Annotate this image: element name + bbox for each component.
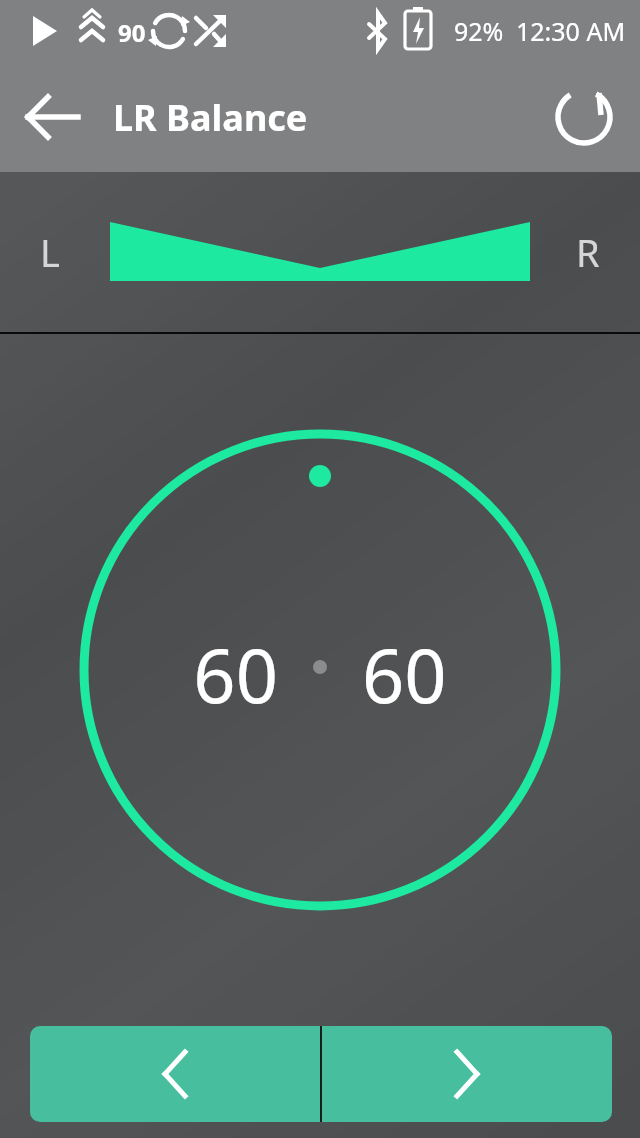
staticText: 90 xyxy=(118,16,146,49)
button[interactable]: Back xyxy=(16,79,92,155)
button[interactable]: Reset xyxy=(548,81,620,153)
staticText: L xyxy=(40,226,60,278)
button[interactable]: Balance dial xyxy=(0,334,640,1008)
staticText: 60 xyxy=(362,624,447,725)
staticText: 12:30 AM xyxy=(516,14,626,48)
staticText: 92% xyxy=(454,14,504,48)
staticText: 60 xyxy=(193,624,278,725)
staticText: LR Balance xyxy=(113,93,308,142)
staticText: R xyxy=(576,226,600,278)
button[interactable]: Shift balance left xyxy=(30,1026,320,1122)
button[interactable]: Shift balance right xyxy=(322,1026,612,1122)
